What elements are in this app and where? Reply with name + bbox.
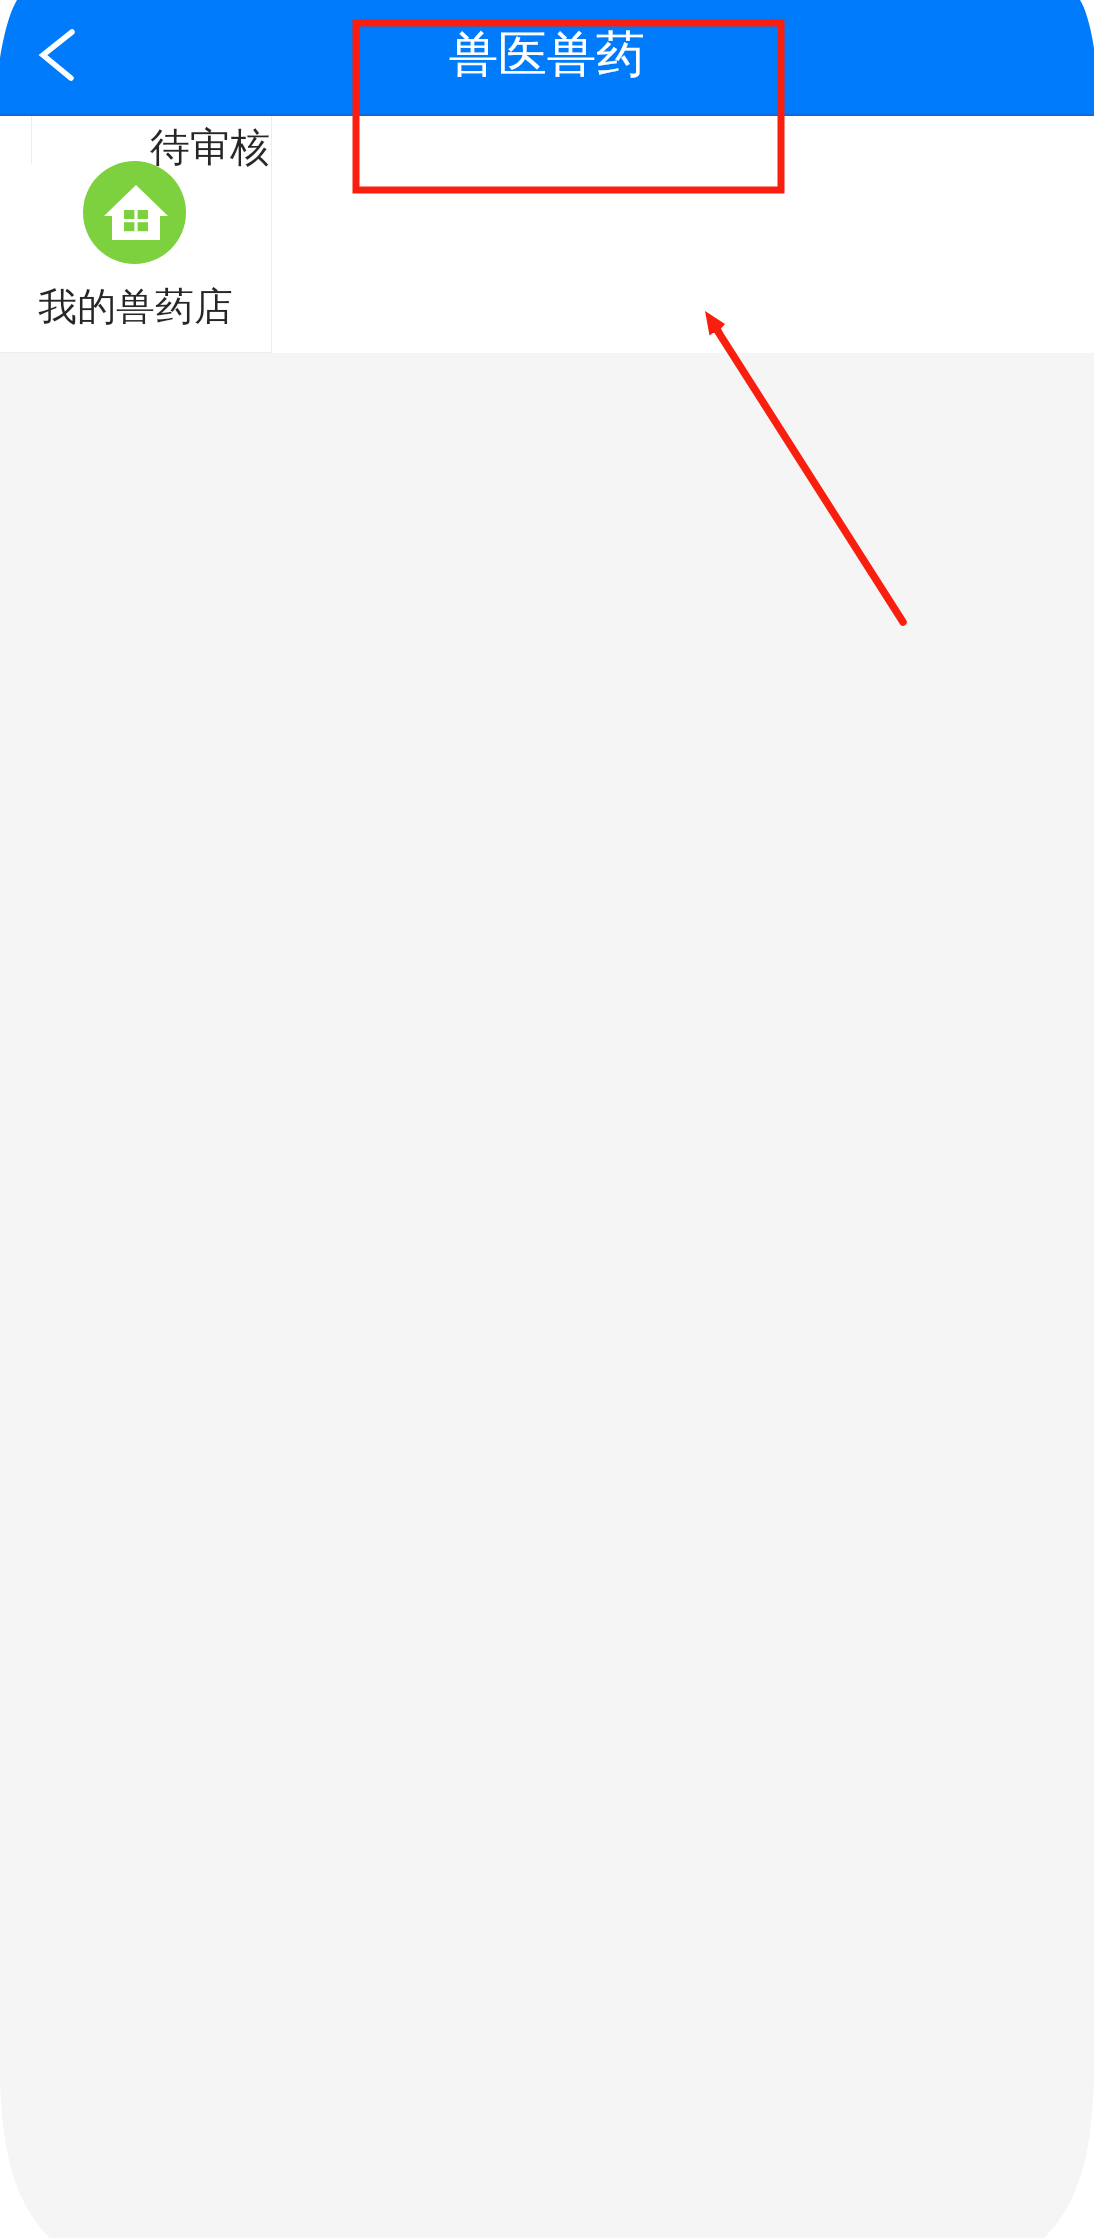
staticText: 兽医兽药 [449, 24, 645, 86]
button[interactable]: 待审核 [0, 116, 272, 353]
staticText: 我的兽药店 [38, 282, 233, 331]
button[interactable]: Back [12, 12, 104, 104]
staticText: 待审核 [150, 122, 270, 172]
